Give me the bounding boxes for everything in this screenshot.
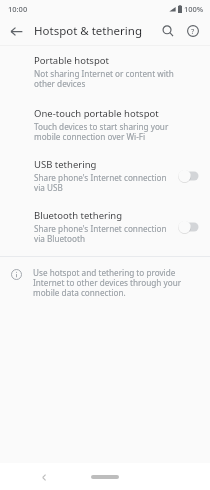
staticText: Use hotspot and tethering to provide Int… <box>33 267 200 299</box>
staticText: Hotspot & tethering <box>34 23 142 39</box>
button[interactable]: Portable hotspot <box>0 52 210 92</box>
staticText: 10:00 <box>8 4 28 14</box>
button[interactable]: USB tethering <box>0 156 210 196</box>
button[interactable] <box>176 218 202 236</box>
button[interactable]: Back <box>33 466 55 488</box>
staticText: Portable hotspot <box>34 54 109 67</box>
staticText: One-touch portable hotspot <box>34 107 159 120</box>
button[interactable]: Bluetooth tethering <box>0 207 210 247</box>
staticText: Touch devices to start sharing your mobi… <box>34 121 196 143</box>
staticText: ? <box>191 26 195 36</box>
staticText: USB tethering <box>34 158 97 171</box>
button[interactable]: Home <box>90 471 120 482</box>
staticText: Share phone's Internet connection via Bl… <box>34 223 170 245</box>
button[interactable]: Help <box>181 19 205 43</box>
staticText: Not sharing Internet or content with oth… <box>34 68 196 90</box>
button[interactable] <box>176 167 202 185</box>
staticText: Share phone's Internet connection via US… <box>34 172 170 194</box>
staticText: Bluetooth tethering <box>34 209 123 222</box>
button[interactable]: One-touch portable hotspot <box>0 105 210 145</box>
button[interactable]: Search <box>156 19 180 43</box>
button[interactable]: Back <box>4 19 28 43</box>
staticText: 100% <box>184 4 204 14</box>
